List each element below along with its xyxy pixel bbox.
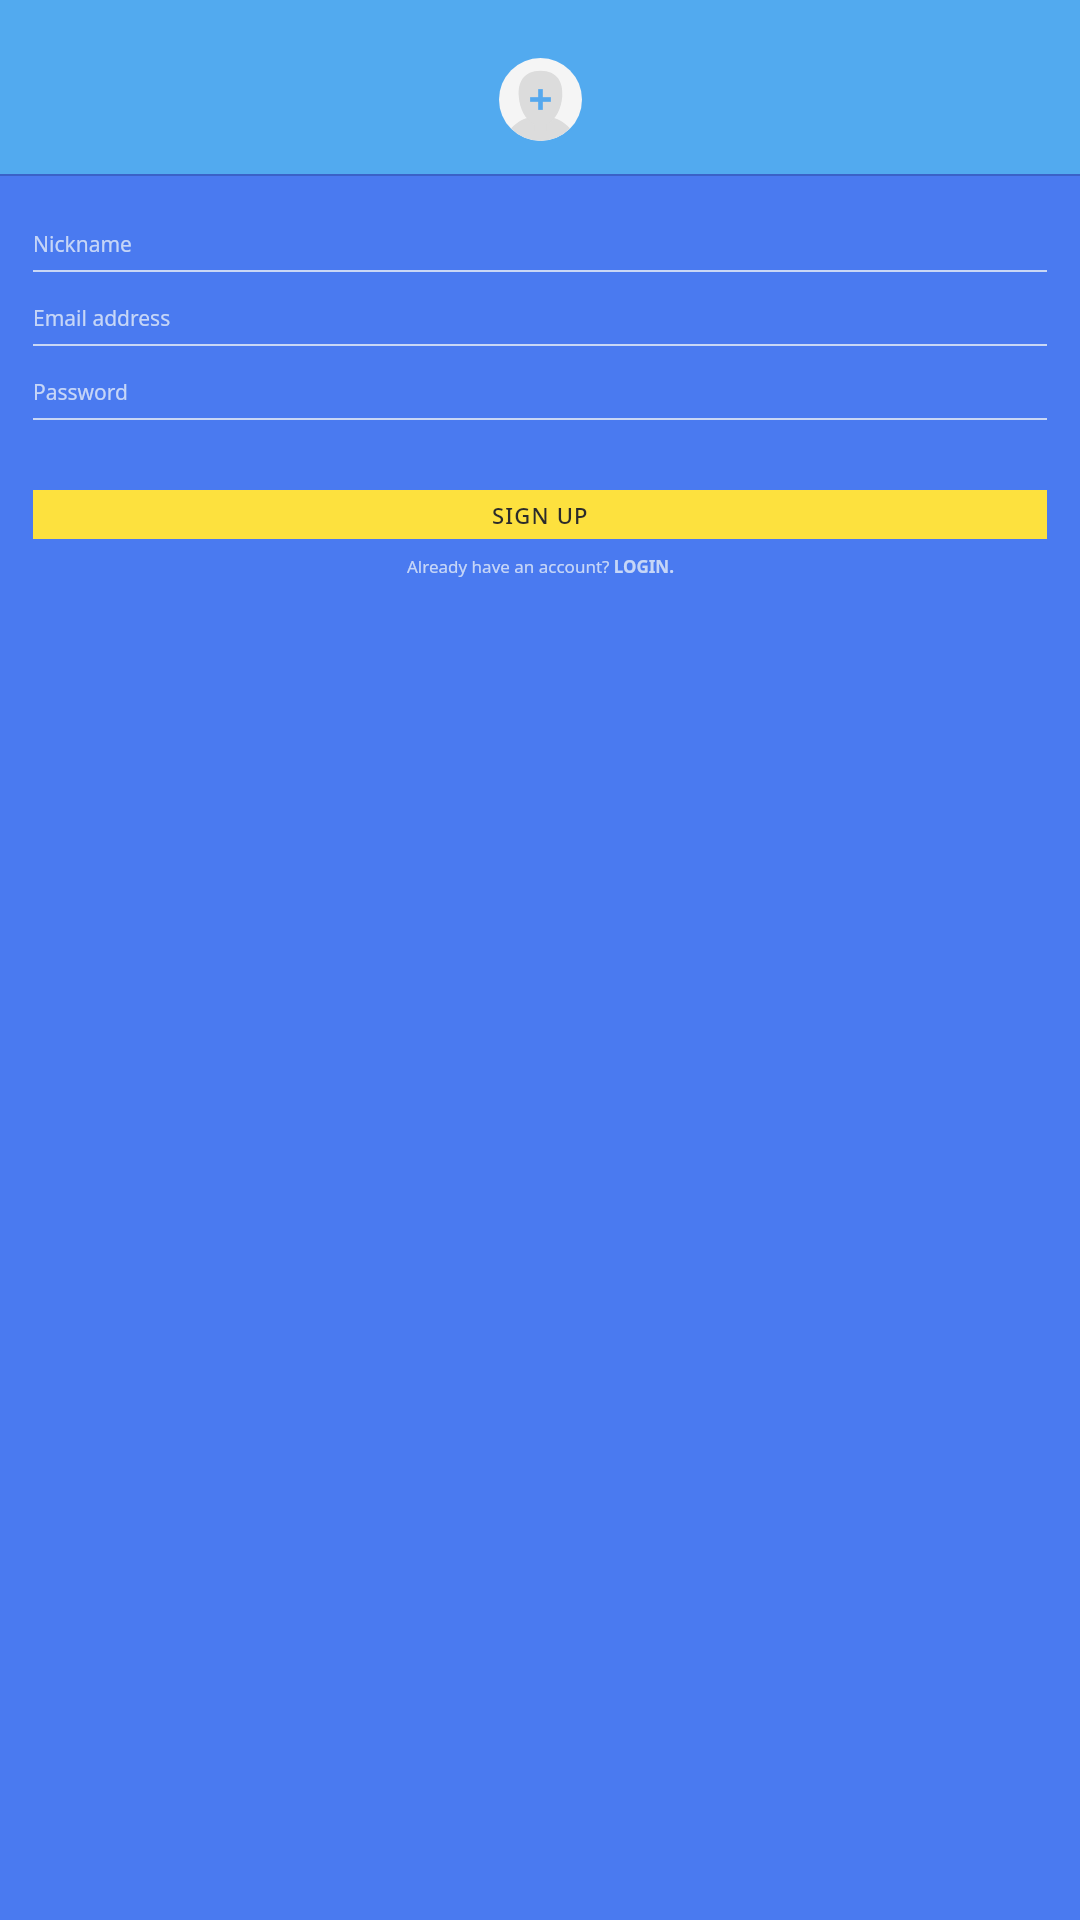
- staticText: SIGN UP: [492, 500, 589, 530]
- staticText: Already have an account? LOGIN.: [407, 555, 674, 578]
- staticText: Password: [33, 378, 128, 407]
- button[interactable]: Nickname: [33, 218, 1047, 272]
- button[interactable]: Already have an account? LOGIN.: [395, 549, 686, 584]
- staticText: Nickname: [33, 230, 132, 259]
- button[interactable]: Add profile photo: [499, 58, 582, 141]
- button[interactable]: SIGN UP: [33, 490, 1047, 539]
- button[interactable]: Email address: [33, 292, 1047, 346]
- button[interactable]: Password: [33, 366, 1047, 420]
- staticText: Email address: [33, 304, 171, 333]
